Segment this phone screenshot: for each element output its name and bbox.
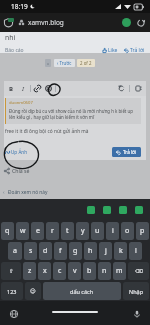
staticText: f [59,246,62,256]
button[interactable]: Emoji [25,282,41,300]
button[interactable]: z [23,262,36,280]
staticText: l [135,246,137,256]
button[interactable]: e [31,222,44,240]
staticText: Nhập [129,288,144,295]
staticText: y [81,226,85,236]
button[interactable]: v [68,262,81,280]
button[interactable]: q [1,222,14,240]
button[interactable]: ‹ Trước [54,59,75,67]
button[interactable]: Shift [1,262,21,280]
button[interactable]: Báo cáo [5,47,24,53]
button[interactable]: w [16,222,29,240]
staticText: ⌫ [135,268,143,274]
staticText: xamvn.blog [28,18,64,27]
button[interactable]: c [53,262,66,280]
button[interactable]: Insert link [33,82,42,95]
button[interactable]: Addresses [115,202,131,218]
staticText: n [102,266,107,276]
button[interactable]: Messages [131,202,147,218]
staticText: ☺ [30,288,36,294]
button[interactable]: r [46,222,59,240]
button[interactable]: Like [102,47,118,53]
staticText: c [58,266,62,276]
staticText: Up Ảnh [11,149,27,155]
button[interactable]: x [38,262,51,280]
staticText: d [43,246,48,256]
staticText: j [105,246,107,256]
button[interactable]: Site info [15,16,28,29]
staticText: h [88,246,93,256]
button[interactable]: Emoji [44,82,53,95]
staticText: ‹ [3,189,5,196]
staticText: w [20,226,26,236]
button[interactable]: a [8,242,22,260]
button[interactable]: Enter [123,282,149,300]
button[interactable]: Change language [7,307,20,320]
button[interactable]: Numbers [1,282,23,300]
button[interactable]: Trả lời [124,47,145,53]
button[interactable]: f [54,242,67,260]
staticText: Trả lời [130,47,145,53]
button[interactable]: ‹ [3,189,48,196]
button[interactable]: m [113,262,126,280]
staticText: q [5,226,10,236]
button[interactable]: o [121,222,134,240]
button[interactable]: B [6,82,15,95]
staticText: ⇧ [9,268,14,274]
button[interactable]: b [83,262,96,280]
button[interactable]: Undo [116,82,126,95]
button[interactable]: Up Ảnh [5,149,27,155]
button[interactable]: I [19,82,27,95]
button[interactable]: p [136,222,149,240]
button[interactable]: Shield [2,16,15,29]
button[interactable]: i [106,222,119,240]
button[interactable]: g [69,242,82,260]
staticText: nhi [5,33,16,42]
button[interactable]: n [98,262,111,280]
button[interactable]: u [91,222,104,240]
staticText: v [73,266,77,276]
button[interactable]: Voice input [130,307,143,320]
staticText: ‹ Trước [57,60,72,66]
button[interactable]: Backspace [128,262,149,280]
button[interactable]: Chia sẻ [4,167,30,174]
button[interactable]: t [61,222,74,240]
button[interactable]: s [24,242,37,260]
button[interactable]: Passwords [83,202,99,218]
button[interactable]: Payment cards [99,202,115,218]
staticText: e [36,226,40,236]
button[interactable]: h [84,242,97,260]
button[interactable]: xamvn.blog [28,13,119,32]
button[interactable]: First page [45,59,51,67]
staticText: Like [108,47,118,53]
staticText: I [22,85,24,93]
staticText: s [29,246,33,256]
button[interactable]: y [76,222,89,240]
staticText: Đúng rồi dịp bú cu với show của nó là mớ… [9,108,139,121]
button[interactable]: 2 of 2 [77,59,95,67]
staticText: Trả lời [123,149,137,155]
staticText: p [140,226,145,236]
button[interactable]: l [129,242,142,260]
staticText: dấu cách [70,288,94,295]
staticText: 123 [7,288,17,295]
staticText: free it it đi ông bội có nút gửi ảnh mà [5,128,89,135]
staticText: 2 of 2 [80,60,92,66]
button[interactable]: Account [119,15,134,30]
staticText: Chia sẻ [12,167,30,174]
button[interactable]: Quote [133,82,143,95]
staticText: b [87,266,92,276]
staticText: a [13,246,17,256]
staticText: i [112,226,114,236]
staticText: Đoán xem nó này [8,189,48,196]
button[interactable]: Trả lời [112,147,141,157]
button[interactable]: k [114,242,127,260]
staticText: 18:19 [11,2,28,11]
button[interactable]: j [99,242,112,260]
staticText: m [116,266,123,276]
staticText: t [66,226,69,236]
button[interactable]: Refresh [134,16,148,30]
staticText: k [119,246,123,256]
button[interactable]: dấu cách [43,282,121,300]
button[interactable]: d [39,242,52,260]
